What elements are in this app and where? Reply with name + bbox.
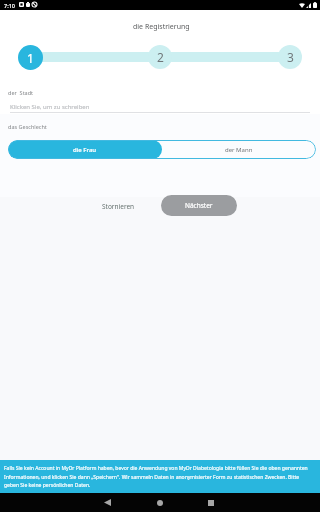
button[interactable]: Recents — [200, 493, 222, 512]
staticText: 3 — [287, 49, 294, 65]
staticText: Nächster — [185, 201, 213, 210]
button[interactable]: die Frau — [8, 140, 162, 159]
staticText: der Stadt — [8, 89, 34, 96]
staticText: Falls Sie kein Account in MyDr Platform … — [4, 465, 314, 488]
staticText: das Geschlecht — [8, 123, 47, 130]
button[interactable]: 3 — [278, 45, 302, 69]
staticText: 7:10 — [4, 2, 15, 9]
staticText: 2 — [157, 49, 164, 65]
staticText: Klicken Sie, um zu schreiben — [10, 103, 90, 111]
staticText: die Registrierung — [133, 22, 190, 32]
button[interactable]: Back — [96, 493, 118, 512]
button[interactable]: Stornieren — [96, 196, 141, 216]
button[interactable]: 2 — [148, 45, 172, 69]
button[interactable]: Nächster — [161, 195, 237, 216]
button[interactable]: der Mann — [162, 140, 316, 159]
staticText: Stornieren — [102, 202, 135, 211]
staticText: der Mann — [225, 146, 253, 154]
staticText: 1 — [27, 50, 34, 66]
staticText: die Frau — [73, 146, 97, 154]
button[interactable]: 1 — [18, 45, 43, 70]
button[interactable]: Home — [149, 493, 171, 512]
